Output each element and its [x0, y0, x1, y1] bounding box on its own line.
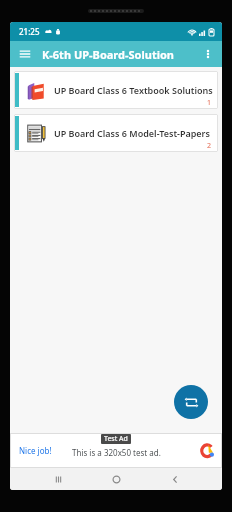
button[interactable]: Open navigation drawer: [14, 43, 36, 65]
button[interactable]: Back: [164, 468, 186, 490]
button[interactable]: UP Board Class 6 Model-Test-Papers: [14, 114, 218, 152]
button[interactable]: UP Board Class 6 Textbook Solutions: [14, 71, 218, 109]
staticText: UP Board Class 6 Model-Test-Papers: [54, 127, 210, 139]
other: Google Ads: [200, 443, 216, 459]
staticText: This is a 320x50 test ad.: [72, 447, 161, 458]
button[interactable]: Home: [105, 468, 127, 490]
staticText: 21:25: [19, 26, 40, 37]
button[interactable]: More options: [197, 43, 219, 65]
button[interactable]: Nice job!: [10, 433, 222, 468]
staticText: K-6th UP-Board-Solution: [42, 47, 174, 62]
staticText: Test Ad: [104, 434, 128, 444]
staticText: Nice job!: [19, 445, 52, 456]
staticText: UP Board Class 6 Textbook Solutions: [54, 84, 213, 96]
button[interactable]: Recent apps: [47, 468, 69, 490]
staticText: 2: [207, 141, 212, 151]
staticText: 1: [207, 98, 212, 108]
button[interactable]: Swap: [174, 385, 208, 419]
